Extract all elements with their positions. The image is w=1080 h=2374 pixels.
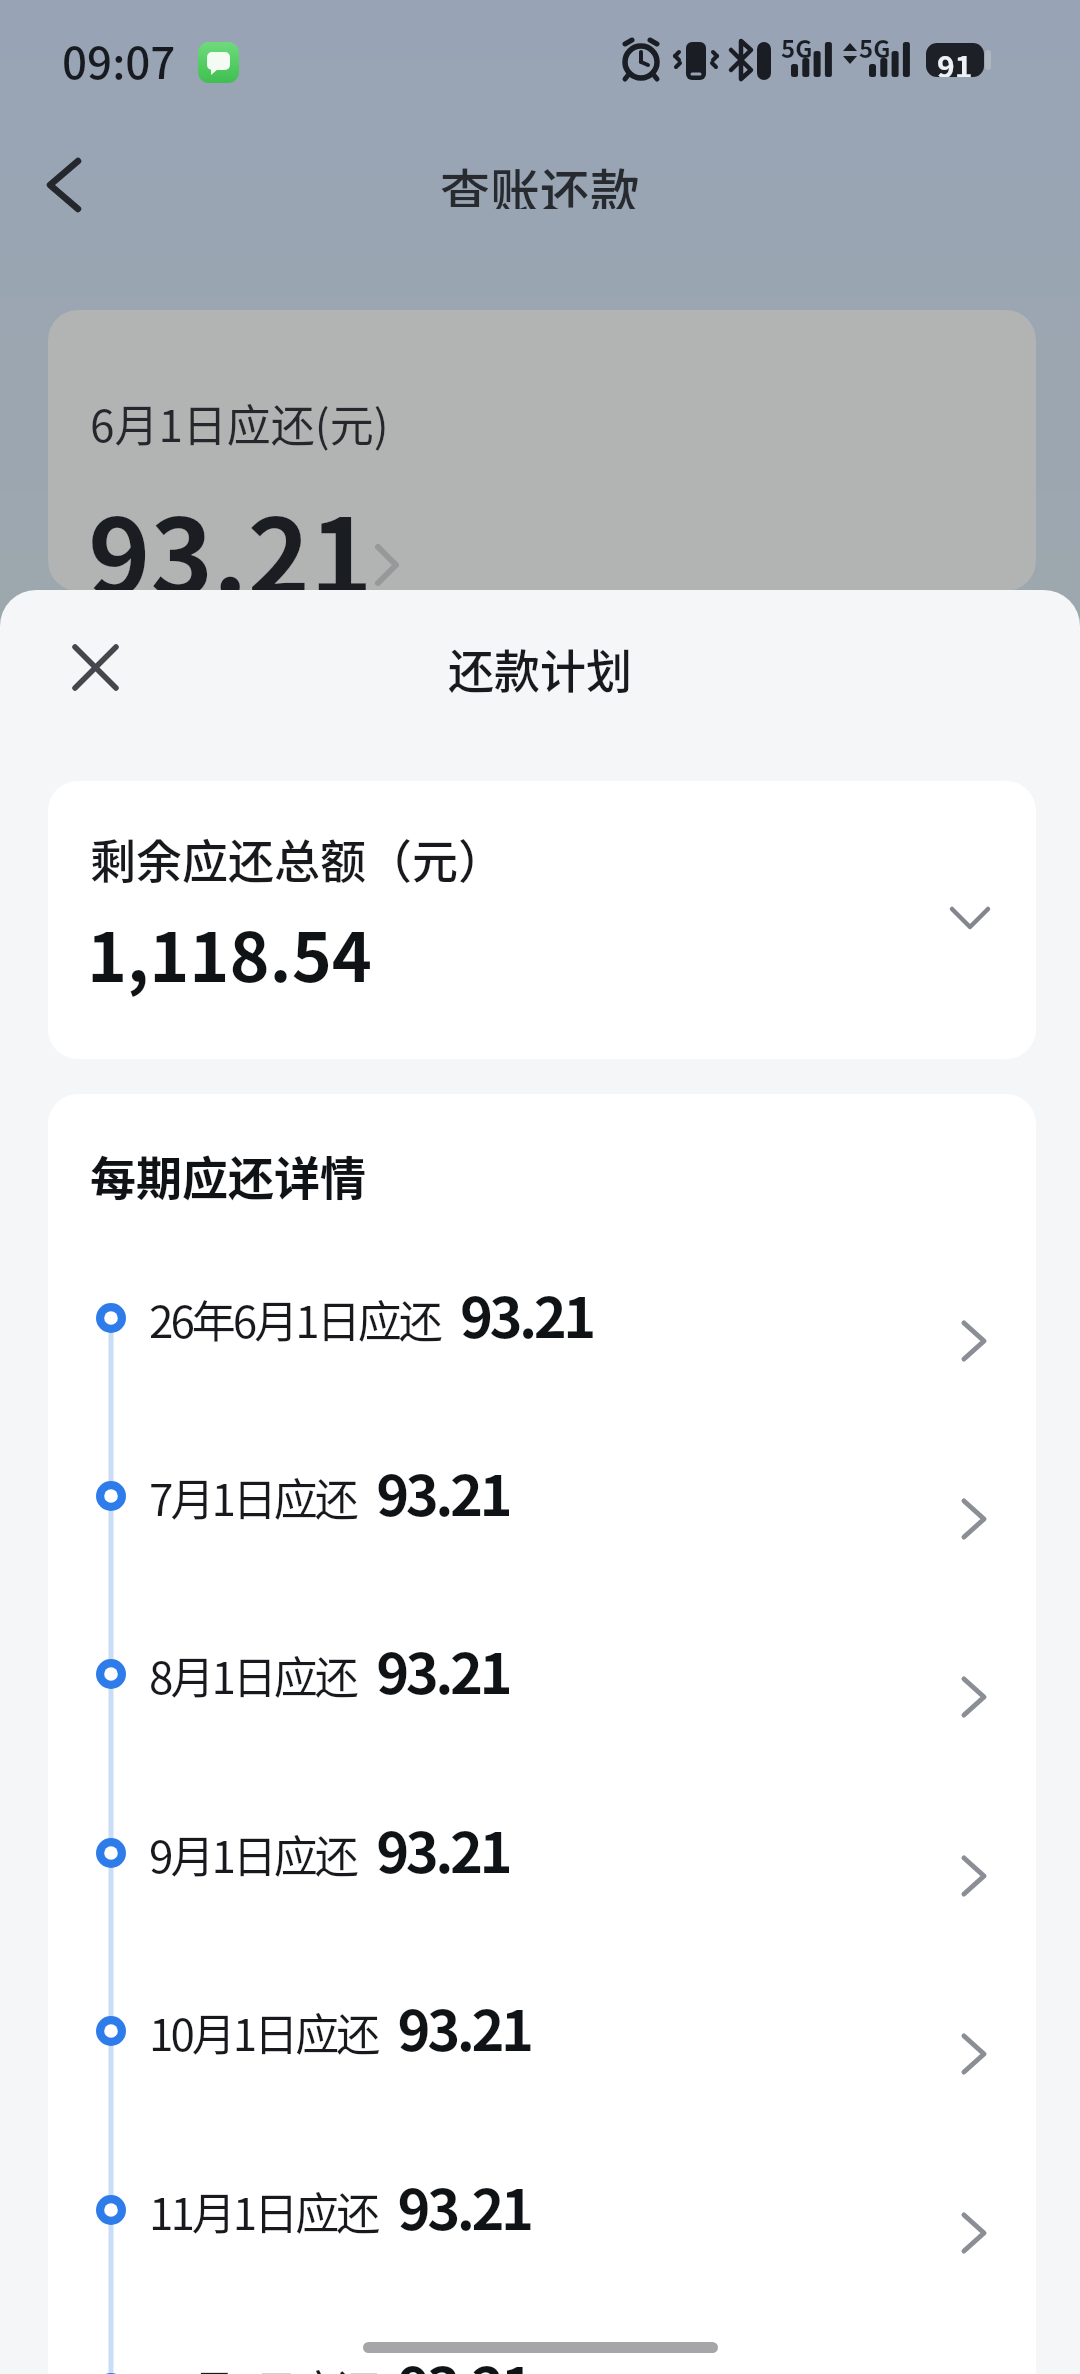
staticText: 9月1日应还 93.21: [149, 1808, 510, 1889]
staticText: 91: [937, 43, 973, 77]
staticText: 查账还款: [440, 153, 640, 209]
staticText: 26年6月1日应还 93.21: [149, 1273, 593, 1354]
staticText: 1,118.54: [87, 903, 372, 1001]
button[interactable]: [44, 158, 84, 212]
staticText: 8月1日应还 93.21: [149, 1629, 510, 1710]
staticText: 6月1日应还(元): [90, 391, 389, 455]
staticText: 剩余应还总额（元）: [90, 825, 504, 892]
button[interactable]: 12月1日应还 93.21: [149, 2338, 1009, 2374]
staticText: 93.21: [88, 473, 373, 591]
staticText: 12月1日应还 93.21: [149, 2343, 531, 2374]
staticText: 7月1日应还 93.21: [149, 1451, 510, 1532]
staticText: 5G: [859, 30, 891, 65]
button[interactable]: [73, 645, 118, 690]
button[interactable]: 26年6月1日应还 93.21: [149, 1268, 1009, 1358]
button[interactable]: 8月1日应还 93.21: [149, 1624, 1009, 1714]
staticText: 10月1日应还 93.21: [149, 1986, 531, 2067]
staticText: 每期应还详情: [90, 1142, 366, 1209]
button[interactable]: 11月1日应还 93.21: [149, 2160, 1009, 2250]
button[interactable]: 9月1日应还 93.21: [149, 1803, 1009, 1893]
staticText: 5G: [781, 30, 813, 65]
button[interactable]: 10月1日应还 93.21: [149, 1981, 1009, 2071]
button[interactable]: 6月1日应还(元): [48, 310, 1036, 591]
staticText: 11月1日应还 93.21: [149, 2165, 531, 2246]
button[interactable]: 7月1日应还 93.21: [149, 1446, 1009, 1536]
staticText: 09:07: [62, 28, 176, 92]
staticText: 还款计划: [448, 635, 632, 702]
button[interactable]: 剩余应还总额（元）: [48, 781, 1036, 1059]
